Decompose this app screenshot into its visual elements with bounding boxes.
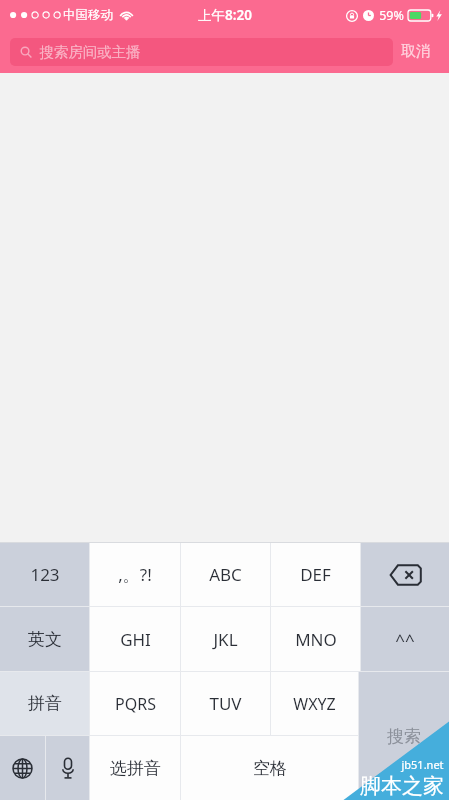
staticText: MNO (295, 628, 337, 651)
staticText: ^^ (395, 628, 415, 651)
button[interactable]: TUV (181, 672, 270, 735)
button[interactable]: JKL (181, 607, 270, 671)
staticText: 取消 (401, 42, 431, 61)
button[interactable]: ABC (181, 543, 270, 606)
button[interactable]: GHI (90, 607, 180, 671)
staticText: 上午8:20 (198, 6, 252, 24)
staticText: 拼音 (28, 693, 62, 714)
staticText: 123 (30, 563, 60, 586)
button[interactable]: 选拼音 (90, 736, 180, 800)
staticText: PQRS (115, 693, 156, 715)
button[interactable]: 英文 (0, 607, 89, 671)
staticText: TUV (209, 692, 242, 715)
button[interactable]: 搜索房间或主播 (10, 38, 393, 66)
staticText: 空格 (253, 758, 287, 779)
staticText: 选拼音 (110, 758, 161, 779)
button[interactable]: ^^ (361, 607, 449, 671)
button[interactable]: 搜索 (359, 672, 449, 800)
staticText: ,。?! (118, 563, 152, 586)
staticText: ABC (209, 563, 242, 586)
button[interactable]: PQRS (90, 672, 180, 735)
staticText: 中国移动 (63, 7, 113, 23)
button[interactable]: 空格 (181, 736, 358, 800)
staticText: 英文 (28, 629, 62, 650)
staticText: 脚本之家 (360, 773, 444, 799)
staticText: GHI (120, 628, 151, 651)
staticText: 59% (379, 7, 404, 24)
button[interactable]: 拼音 (0, 672, 89, 735)
button[interactable]: Voice input (46, 736, 89, 800)
staticText: WXYZ (293, 693, 336, 715)
button[interactable]: 取消 (393, 35, 439, 68)
button[interactable]: Switch keyboard (0, 736, 45, 800)
staticText: 搜索 (387, 726, 421, 747)
button[interactable]: WXYZ (271, 672, 358, 735)
button[interactable]: DEF (271, 543, 360, 606)
button[interactable]: ,。?! (90, 543, 180, 606)
staticText: 搜索房间或主播 (39, 43, 141, 61)
button[interactable]: 123 (0, 543, 89, 606)
button[interactable]: MNO (271, 607, 360, 671)
button[interactable]: Backspace (361, 543, 449, 606)
staticText: DEF (300, 563, 331, 586)
staticText: JKL (213, 628, 238, 651)
staticText: jb51.net (401, 757, 444, 772)
